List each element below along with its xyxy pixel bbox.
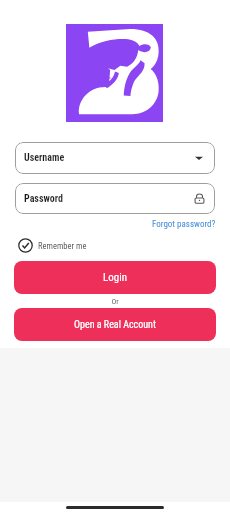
staticText: Username xyxy=(24,152,65,164)
staticText: Forgot password? xyxy=(152,219,216,230)
staticText: Or xyxy=(0,297,230,306)
other: Password is hidden xyxy=(193,192,206,205)
staticText: Password xyxy=(24,193,63,205)
staticText: Login xyxy=(103,271,128,284)
staticText: Remember me xyxy=(38,241,87,251)
button[interactable]: Open a Real Account xyxy=(14,308,216,341)
button[interactable]: Password xyxy=(15,183,215,214)
button[interactable]: Username xyxy=(15,142,215,174)
button[interactable]: Forgot password? xyxy=(0,219,216,230)
button[interactable]: Remember me xyxy=(18,238,87,253)
button[interactable]: Login xyxy=(14,261,216,294)
staticText: Open a Real Account xyxy=(74,319,156,331)
